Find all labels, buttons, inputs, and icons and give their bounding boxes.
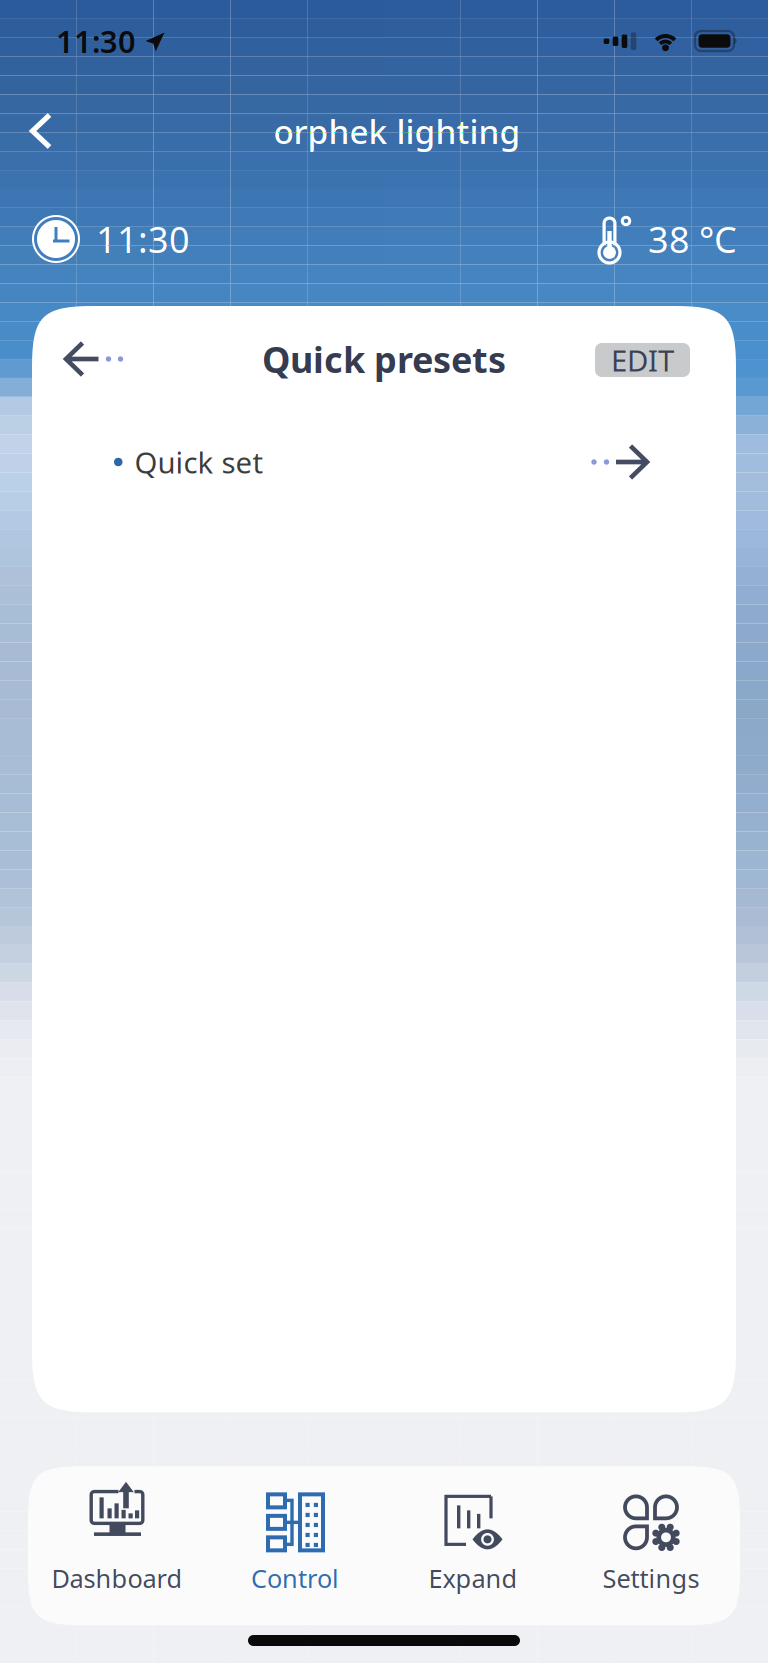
staticText: Control	[251, 1561, 339, 1595]
staticText: Settings	[602, 1561, 699, 1595]
button[interactable]: Dashboard	[28, 1494, 206, 1595]
staticText: Dashboard	[51, 1561, 182, 1595]
button[interactable]: Back	[53, 324, 133, 394]
button[interactable]: Settings	[562, 1494, 740, 1595]
button[interactable]: Expand	[384, 1494, 562, 1595]
staticText: orphek lighting	[273, 109, 520, 153]
staticText: 11:30	[56, 21, 136, 61]
button[interactable]: EDIT	[595, 342, 690, 376]
staticText: Quick presets	[262, 335, 506, 383]
button[interactable]: Quick set	[32, 412, 736, 512]
staticText: 11:30	[96, 215, 190, 263]
button[interactable]: Control	[206, 1494, 384, 1595]
button[interactable]: Back	[10, 94, 72, 167]
staticText: Quick set	[134, 442, 263, 481]
staticText: EDIT	[611, 340, 674, 379]
staticText: 38 °C	[648, 215, 737, 263]
staticText: Expand	[428, 1561, 517, 1595]
